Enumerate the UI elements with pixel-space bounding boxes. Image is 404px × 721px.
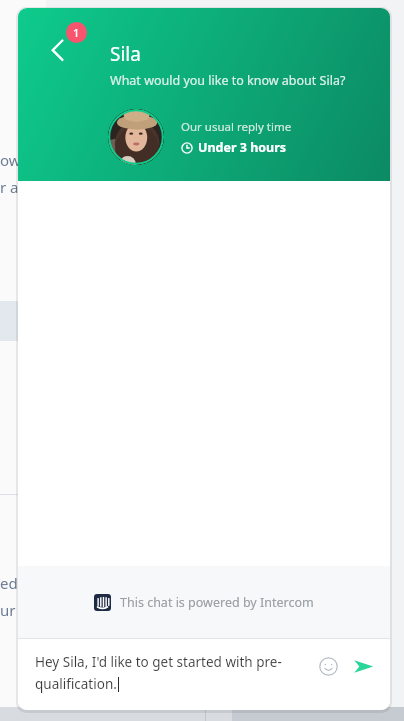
staticText: r a bbox=[0, 177, 19, 197]
staticText: Hey Sila, I'd like to get started with p… bbox=[35, 653, 282, 671]
button[interactable]: This chat is powered by Intercom bbox=[90, 590, 318, 615]
button[interactable]: Back bbox=[36, 26, 80, 70]
staticText: 1 bbox=[73, 25, 80, 40]
button[interactable]: Hey Sila, I'd like to get started with p… bbox=[18, 639, 390, 710]
button[interactable]: Send bbox=[350, 653, 376, 679]
staticText: ur bbox=[0, 600, 16, 620]
staticText: ed bbox=[0, 573, 18, 593]
staticText: Under 3 hours bbox=[198, 139, 287, 156]
staticText: Our usual reply time bbox=[181, 119, 292, 135]
staticText: qualification. bbox=[35, 675, 117, 693]
staticText: This chat is powered by Intercom bbox=[120, 594, 314, 611]
staticText: Sila bbox=[110, 41, 141, 67]
staticText: ow bbox=[0, 150, 21, 170]
button[interactable]: Emoji bbox=[315, 653, 341, 679]
staticText: What would you like to know about Sila? bbox=[110, 72, 346, 89]
